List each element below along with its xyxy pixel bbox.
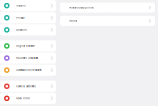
button[interactable]: HMS Core <box>0 93 56 104</box>
button[interactable]: Users & accounts <box>0 81 56 92</box>
button[interactable]: Location <box>0 24 56 35</box>
staticText: Location <box>16 28 26 31</box>
staticText: Feature descriptions <box>69 6 93 9</box>
button[interactable]: About <box>60 16 155 26</box>
button[interactable]: Security <box>0 0 56 11</box>
button[interactable]: HUAWEI Assistant <box>0 52 56 64</box>
button[interactable]: Feature descriptions <box>60 3 155 13</box>
staticText: HUAWEI Assistant <box>16 56 38 60</box>
staticText: About <box>69 19 77 22</box>
staticText: Security <box>16 4 25 7</box>
button[interactable]: Privacy <box>0 12 56 23</box>
staticText: Users & accounts <box>16 85 35 88</box>
staticText: HMS Core <box>16 97 29 100</box>
staticText: Accessibility features <box>16 69 41 72</box>
staticText: Privacy <box>16 16 24 19</box>
button[interactable]: Accessibility features <box>0 64 56 76</box>
button[interactable]: Digital Balance <box>0 40 56 52</box>
staticText: Digital Balance <box>16 44 34 47</box>
